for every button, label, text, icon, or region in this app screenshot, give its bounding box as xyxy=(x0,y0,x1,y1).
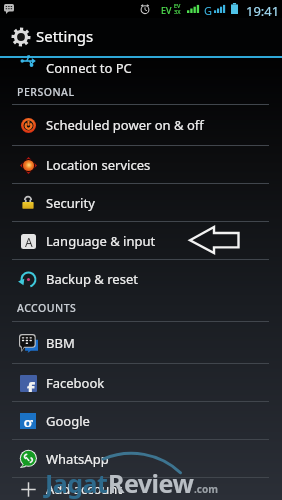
button[interactable]: Location services xyxy=(0,146,282,183)
button[interactable]: USB xyxy=(0,58,282,80)
button[interactable]: Security xyxy=(0,184,282,221)
staticText: BBM xyxy=(46,334,75,352)
staticText: Google xyxy=(46,412,90,430)
button[interactable]: f xyxy=(0,364,282,401)
staticText: Review xyxy=(108,466,194,500)
staticText: PERSONAL xyxy=(17,85,75,99)
other: Add account xyxy=(21,482,36,497)
other: USB xyxy=(20,53,36,69)
staticText: Jagat xyxy=(45,466,108,500)
button[interactable]: WhatsApp xyxy=(0,440,282,477)
staticText: Settings xyxy=(36,26,94,46)
staticText: 19:41 xyxy=(246,2,280,20)
staticText: WhatsApp xyxy=(46,450,109,468)
staticText: Add account xyxy=(46,480,123,498)
button[interactable]: g xyxy=(0,402,282,439)
staticText: G xyxy=(204,3,213,18)
staticText: ACCOUNTS xyxy=(17,301,77,315)
staticText: f xyxy=(27,377,35,392)
staticText: .com xyxy=(194,482,218,496)
staticText: Connect to PC xyxy=(46,59,132,77)
button[interactable]: BBM xyxy=(0,322,282,363)
staticText: Scheduled power on & off xyxy=(46,116,204,134)
staticText: EV 3X xyxy=(174,2,181,15)
button[interactable]: Scheduled power on & off xyxy=(0,105,282,145)
staticText: g xyxy=(23,411,34,427)
staticText: Language & input xyxy=(46,232,156,250)
button[interactable]: A xyxy=(0,222,282,259)
staticText: Backup & reset xyxy=(46,270,138,288)
staticText: Location services xyxy=(46,156,151,174)
button[interactable]: Add account xyxy=(0,478,282,500)
staticText: EV xyxy=(161,4,172,16)
button[interactable]: Backup & reset xyxy=(0,260,282,297)
staticText: Security xyxy=(46,194,95,212)
other: Settings xyxy=(11,27,31,47)
staticText: A xyxy=(25,234,33,249)
staticText: Facebook xyxy=(46,374,105,392)
button[interactable]: Settings xyxy=(0,18,282,56)
